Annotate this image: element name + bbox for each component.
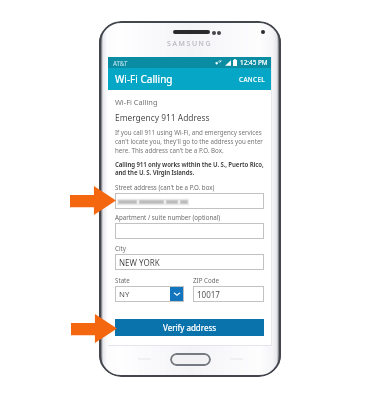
staticText: Apartment / suite number (optional): [115, 213, 221, 221]
staticText: Wi-Fi Calling: [115, 72, 173, 86]
staticText: Street address (can't be a P.O. box): [115, 183, 215, 191]
staticText: If you call 911 using Wi-Fi, and emergen…: [115, 128, 264, 155]
staticText: AT&T: [113, 59, 128, 67]
staticText: State: [115, 276, 130, 284]
button[interactable]: Home: [170, 353, 211, 366]
staticText: NEW YORK: [119, 257, 160, 268]
staticText: Wi-Fi Calling: [115, 97, 158, 107]
button[interactable]: [115, 193, 264, 209]
staticText: City: [115, 244, 126, 252]
button[interactable]: NEW YORK: [115, 254, 264, 270]
staticText: CANCEL: [239, 75, 266, 84]
button[interactable]: 10017: [193, 286, 264, 302]
button[interactable]: Verify address: [115, 319, 264, 336]
staticText: 12:45 PM: [240, 58, 268, 67]
button[interactable]: [115, 223, 264, 239]
staticText: Emergency 911 Address: [115, 112, 210, 123]
staticText: ZIP Code: [193, 276, 219, 284]
staticText: SAMSUNG: [167, 39, 213, 49]
staticText: NY: [119, 289, 130, 300]
button[interactable]: CANCEL: [232, 68, 272, 90]
staticText: 10017: [197, 289, 220, 300]
staticText: Calling 911 only works within the U. S.,…: [115, 160, 264, 177]
staticText: Verify address: [163, 322, 217, 333]
button[interactable]: NY: [115, 286, 184, 302]
